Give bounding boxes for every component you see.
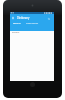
staticText: RECENT bbox=[13, 22, 21, 25]
button[interactable]: RECENT bbox=[9, 22, 24, 31]
staticText: Recent bbox=[12, 31, 20, 34]
button[interactable]: FAVOURITES bbox=[24, 22, 40, 31]
button[interactable]: Home bbox=[30, 82, 35, 87]
button[interactable]: Open navigation drawer bbox=[10, 15, 15, 20]
staticText: FAVOURITES bbox=[26, 22, 39, 25]
button[interactable]: Search bbox=[46, 16, 52, 22]
staticText: Dictionary bbox=[17, 16, 30, 20]
